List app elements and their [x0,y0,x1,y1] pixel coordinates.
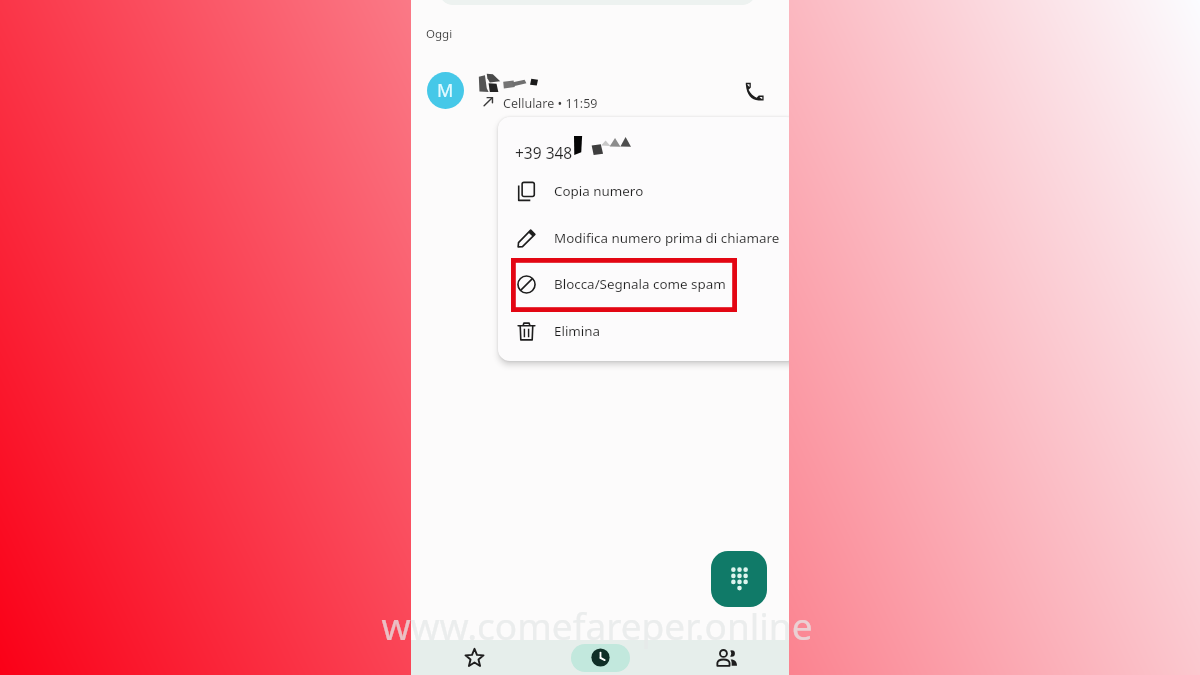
button[interactable]: M [411,64,789,118]
staticText: www.comefareper.online [0,600,1197,650]
button[interactable]: Chiama [734,71,774,111]
button[interactable]: Contatti [663,640,789,675]
staticText: Modifica numero prima di chiamare [554,229,780,247]
button[interactable]: Blocca/Segnala come spam [498,261,789,307]
staticText: M [437,78,454,103]
staticText: Cellulare • 11:59 [503,95,598,112]
button[interactable]: Recenti [537,640,663,675]
staticText: Copia numero [554,182,644,200]
button[interactable]: Elimina [498,308,789,354]
button[interactable]: Copia numero [498,168,789,214]
staticText: Oggi [426,26,453,42]
staticText: Elimina [554,322,601,340]
button[interactable]: Modifica numero prima di chiamare [498,215,789,261]
button[interactable]: Preferiti [411,640,537,675]
staticText: +39 348 [515,142,573,163]
staticText: Blocca/Segnala come spam [554,275,726,293]
button[interactable]: Tastierino [711,551,767,607]
